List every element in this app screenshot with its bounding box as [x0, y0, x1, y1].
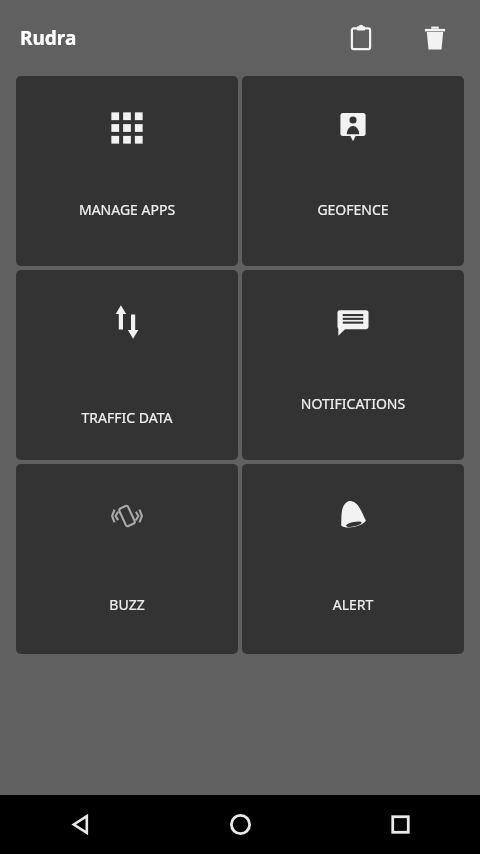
staticText: NOTIFICATIONS: [242, 394, 464, 413]
staticText: GEOFENCE: [242, 200, 464, 219]
button[interactable]: GEOFENCE: [242, 76, 464, 266]
button[interactable]: BUZZ: [16, 464, 238, 654]
button[interactable]: TRAFFIC DATA: [16, 270, 238, 460]
staticText: TRAFFIC DATA: [16, 408, 238, 427]
button[interactable]: Clipboard: [336, 13, 386, 63]
staticText: ALERT: [242, 595, 464, 614]
button[interactable]: Back: [0, 795, 160, 854]
button[interactable]: Recent apps: [320, 795, 480, 854]
button[interactable]: Delete: [410, 13, 460, 63]
staticText: MANAGE APPS: [16, 200, 238, 219]
button[interactable]: ALERT: [242, 464, 464, 654]
button[interactable]: Home: [160, 795, 320, 854]
staticText: Rudra: [20, 25, 77, 51]
staticText: BUZZ: [16, 595, 238, 614]
button[interactable]: NOTIFICATIONS: [242, 270, 464, 460]
button[interactable]: MANAGE APPS: [16, 76, 238, 266]
